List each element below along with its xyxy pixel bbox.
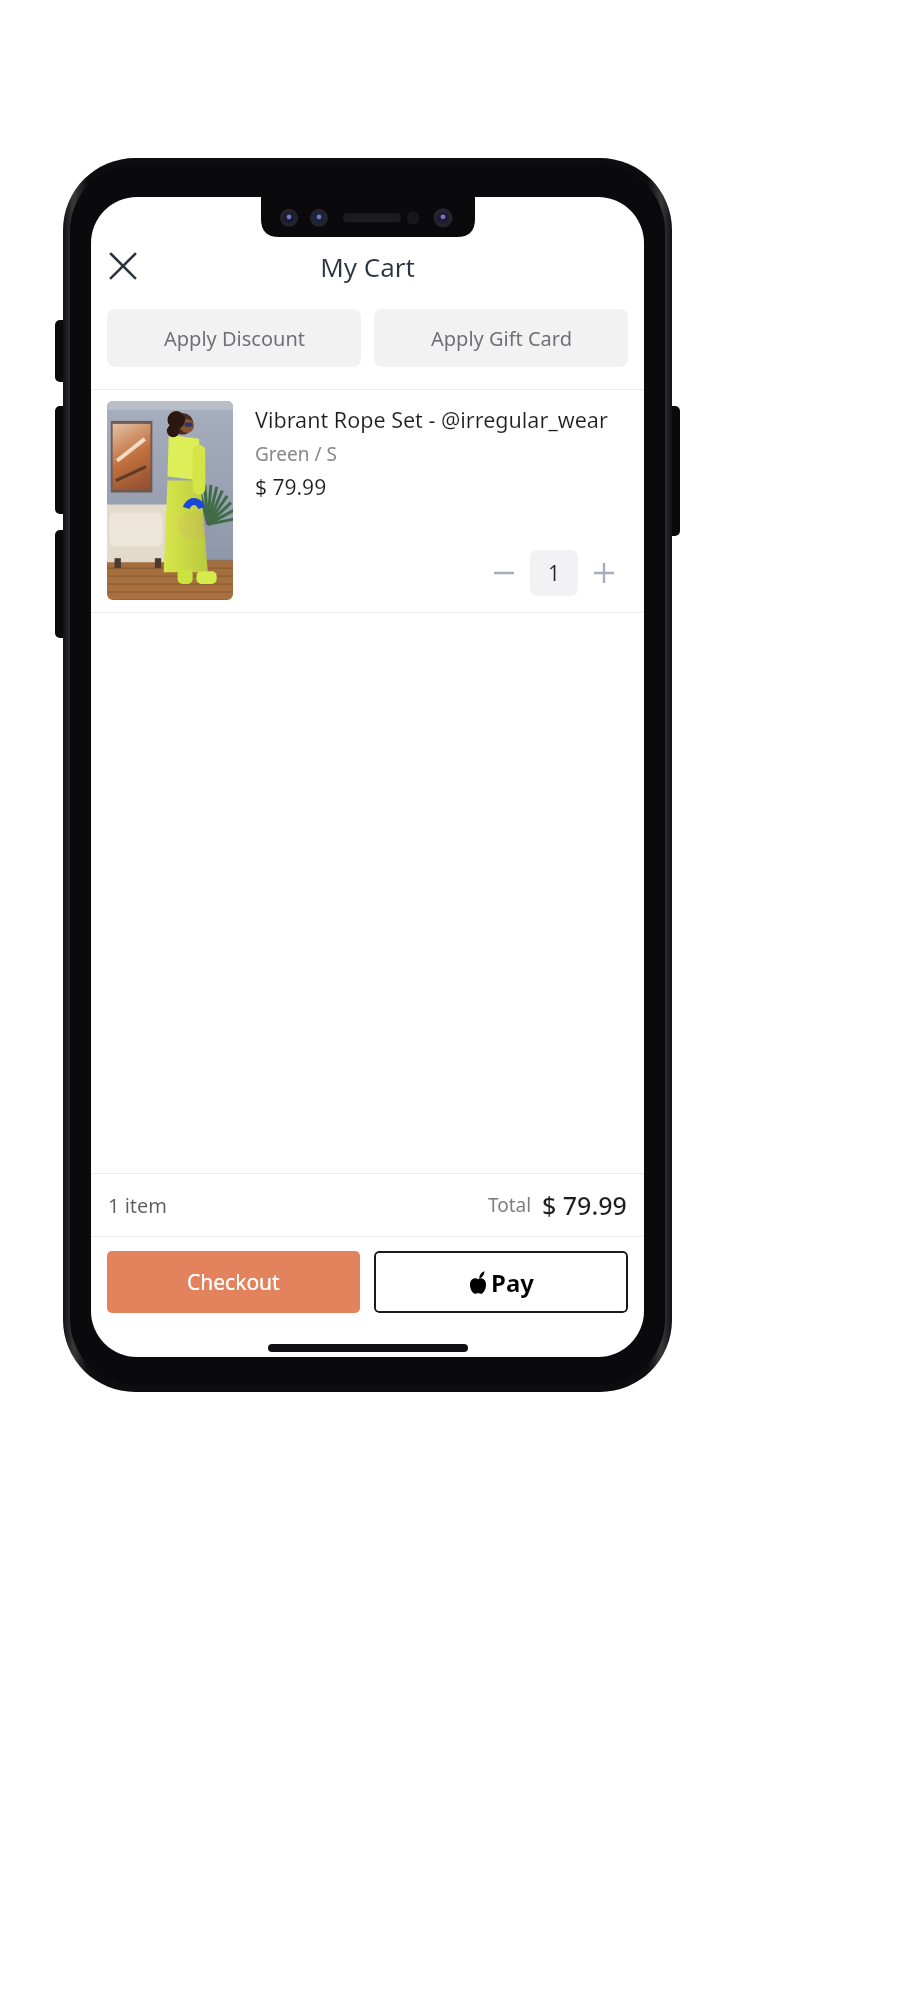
staticText: Apply Discount <box>164 325 305 352</box>
staticText: Apply Gift Card <box>431 325 572 352</box>
staticText: $ 79.99 <box>255 473 327 502</box>
button[interactable]: Apple Pay <box>374 1251 628 1313</box>
button[interactable]: Apply Discount <box>107 309 361 367</box>
button[interactable]: Increase quantity <box>582 551 626 595</box>
staticText: 1 item <box>108 1192 167 1219</box>
button[interactable]: Apply Gift Card <box>374 309 628 367</box>
staticText: Green / S <box>255 441 337 467</box>
staticText: Total <box>488 1192 532 1218</box>
staticText: My Cart <box>91 249 644 284</box>
staticText: 1 <box>548 559 561 588</box>
button[interactable]: 1 <box>530 550 578 596</box>
button[interactable]: Vibrant Rope Set - @irregular_wear <box>255 405 608 434</box>
staticText: $ 79.99 <box>542 1188 627 1222</box>
button[interactable]: Vibrant Rope Set product photo <box>107 401 233 600</box>
button[interactable]: Close <box>99 242 147 290</box>
button[interactable]: Decrease quantity <box>482 551 526 595</box>
button[interactable]: Checkout <box>107 1251 360 1313</box>
staticText: Pay <box>491 1266 534 1299</box>
staticText: Checkout <box>187 1268 280 1297</box>
